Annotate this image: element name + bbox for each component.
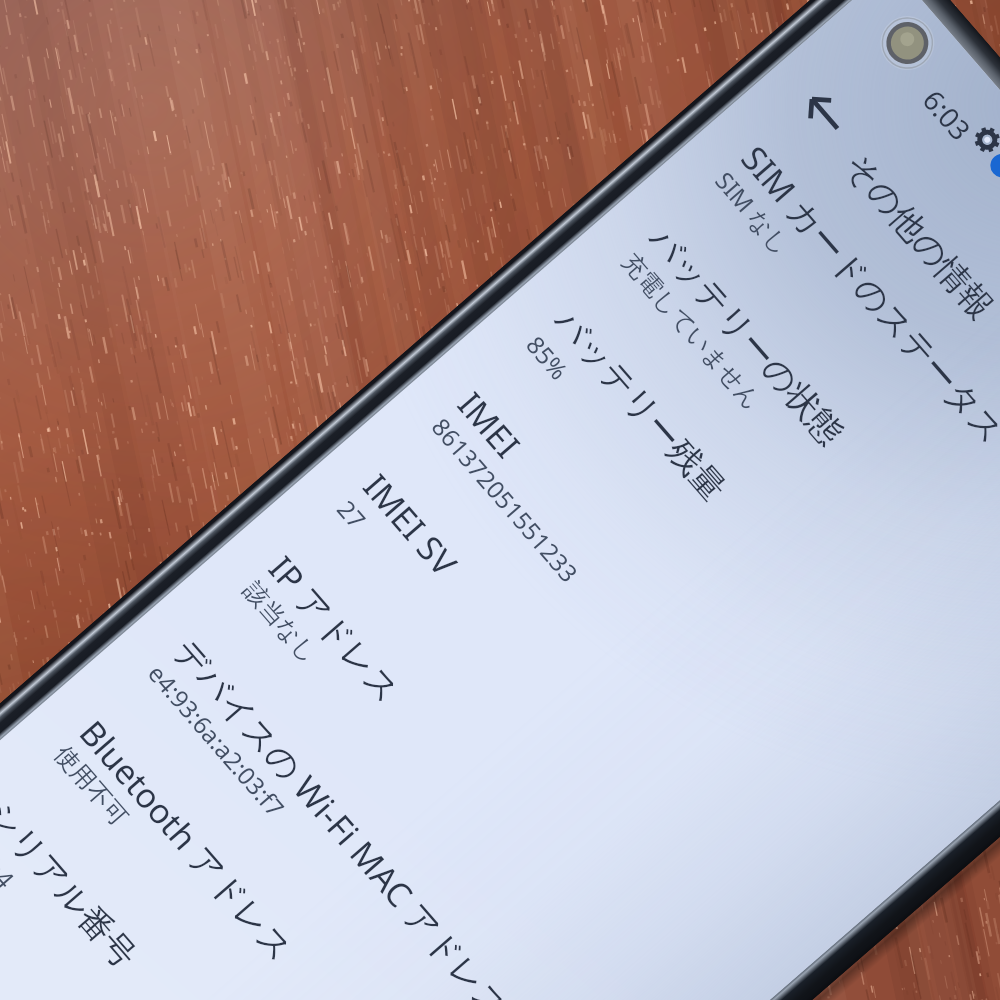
staticText: e4:93:6a:a2:03:f7 [141, 657, 292, 824]
button[interactable]: Navigate up [788, 78, 861, 150]
button[interactable]: IP アドレス [159, 516, 715, 1000]
staticText: バッテリーの状態 [639, 218, 852, 454]
button[interactable]: Settings [964, 117, 1000, 163]
staticText: zedb4 [0, 821, 22, 895]
staticText: その他の情報 [835, 144, 1000, 328]
staticText: SIM カードのステータス [731, 136, 1000, 454]
staticText: Bluetooth アドレス [70, 710, 304, 971]
button[interactable]: IMEI SV [254, 434, 810, 1000]
staticText: 6:03 [915, 81, 980, 148]
staticText: IP アドレス [259, 546, 411, 712]
staticText: シリアル番号 [0, 792, 146, 977]
button[interactable]: SIM カードのステータス [632, 105, 1000, 719]
staticText: IMEI [448, 382, 531, 467]
button[interactable]: IMEI [348, 352, 904, 965]
button[interactable]: Bluetooth アドレス [0, 680, 526, 1000]
staticText: 使用不可 [48, 739, 135, 832]
staticText: IMEI SV [353, 464, 468, 586]
staticText: バッテリー残量 [545, 300, 735, 510]
button[interactable]: バッテリーの状態 [537, 187, 1000, 801]
staticText: 該当なし [237, 575, 325, 670]
button[interactable]: シリアル番号 [0, 762, 432, 1000]
button[interactable]: バッテリー残量 [443, 270, 999, 883]
staticText: 85% [519, 329, 576, 387]
staticText: 27 [330, 493, 373, 536]
staticText: SIM なし [708, 165, 798, 261]
button[interactable]: デバイスの Wi-Fi MAC アドレス [65, 598, 621, 1000]
staticText: 861372051551233 [425, 411, 585, 589]
staticText: デバイスの Wi-Fi MAC アドレス [164, 628, 520, 1000]
staticText: 充電していません [615, 247, 768, 416]
